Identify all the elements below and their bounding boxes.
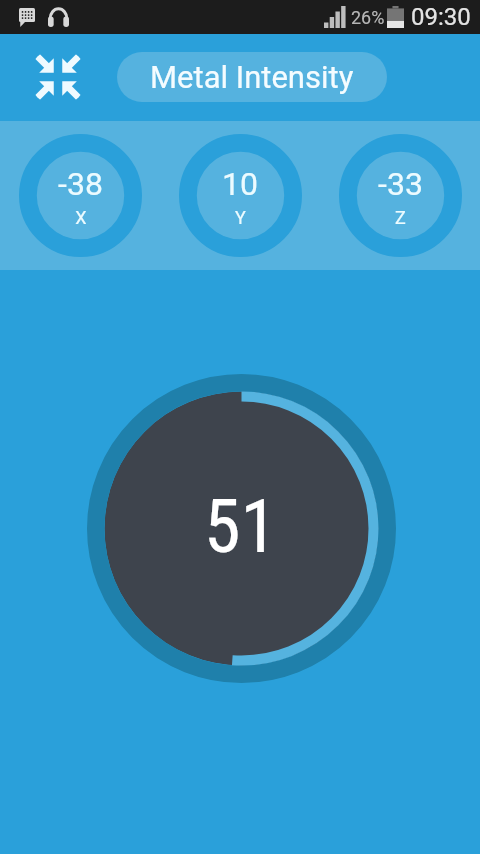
staticText: 10 <box>222 165 258 203</box>
staticText: Metal Intensity <box>150 59 354 95</box>
button[interactable]: Collapse <box>29 48 87 106</box>
staticText: -38 <box>58 165 103 203</box>
staticText: Y <box>235 207 246 228</box>
button[interactable]: -33 <box>320 121 480 270</box>
button[interactable]: Metal Intensity <box>117 52 387 102</box>
staticText: 26% <box>351 7 385 28</box>
staticText: Z <box>395 207 406 228</box>
staticText: 51 <box>204 483 278 570</box>
button[interactable]: 10 <box>160 121 320 270</box>
staticText: -33 <box>378 165 423 203</box>
staticText: X <box>75 207 87 228</box>
staticText: 09:30 <box>411 3 471 31</box>
button[interactable]: -38 <box>0 121 160 270</box>
